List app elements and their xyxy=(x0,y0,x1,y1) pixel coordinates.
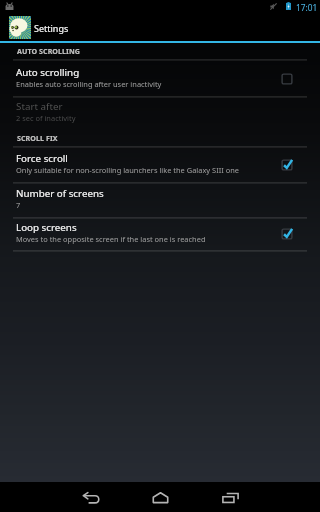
staticText: 7 xyxy=(16,200,21,210)
staticText: Force scroll xyxy=(16,152,68,165)
staticText: Auto scrolling xyxy=(16,66,80,79)
staticText: Only suitable for non-scrolling launcher… xyxy=(16,165,239,175)
button[interactable]: Number of screens xyxy=(0,182,320,217)
button[interactable]: Recent apps xyxy=(195,482,265,512)
button[interactable]: Start after xyxy=(0,95,320,130)
staticText: Settings xyxy=(34,22,69,34)
staticText: Moves to the opposite screen if the last… xyxy=(16,234,206,244)
staticText: Enables auto scrolling after user inacti… xyxy=(16,79,162,89)
button[interactable]: Loop screens xyxy=(0,216,320,251)
button[interactable]: Settings xyxy=(0,14,320,41)
staticText: Loop screens xyxy=(16,221,77,234)
button[interactable]: Auto scrolling xyxy=(0,61,320,96)
staticText: AUTO SCROLLING xyxy=(17,46,80,56)
button[interactable]: Force scroll xyxy=(0,147,320,182)
staticText: SCROLL FIX xyxy=(17,133,58,143)
staticText: 2 sec of inactivity xyxy=(16,113,76,123)
button[interactable]: Home xyxy=(125,482,195,512)
staticText: Start after xyxy=(16,100,63,113)
button[interactable]: Back xyxy=(55,482,125,512)
staticText: 17:01 xyxy=(296,2,318,13)
staticText: Number of screens xyxy=(16,187,104,200)
